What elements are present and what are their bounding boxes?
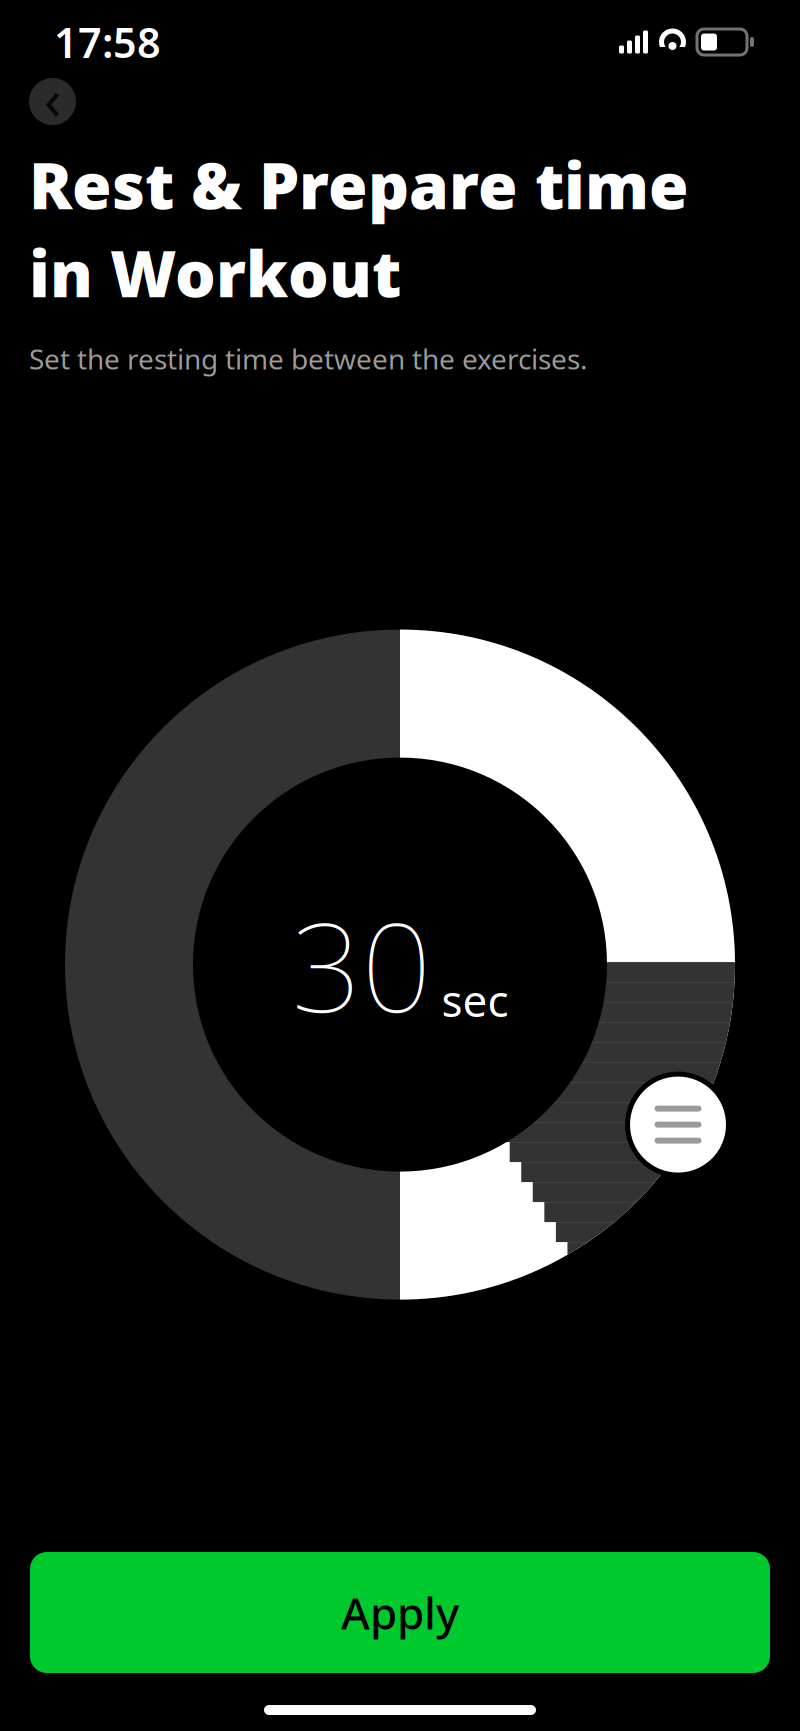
button[interactable]: Drag to adjust rest time bbox=[627, 1074, 728, 1175]
staticText: 30 bbox=[291, 883, 431, 1046]
button[interactable]: Back bbox=[29, 78, 76, 125]
staticText: Rest & Prepare time bbox=[29, 142, 689, 227]
staticText: Set the resting time between the exercis… bbox=[29, 340, 588, 377]
staticText: ‹ bbox=[44, 61, 61, 135]
staticText: sec bbox=[441, 971, 508, 1029]
staticText: Apply bbox=[341, 1583, 459, 1642]
button[interactable]: Apply bbox=[30, 1552, 770, 1673]
staticText: in Workout bbox=[29, 230, 401, 315]
staticText: 17:58 bbox=[54, 15, 161, 69]
